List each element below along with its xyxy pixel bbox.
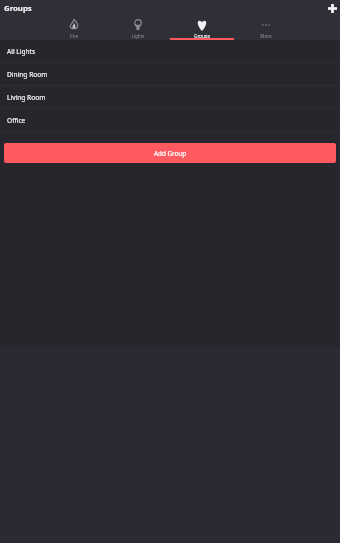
staticText: Living Room xyxy=(7,93,46,102)
staticText: More xyxy=(260,33,272,39)
staticText: Office xyxy=(7,116,26,125)
staticText: Dining Room xyxy=(7,70,48,79)
staticText: All Lights xyxy=(7,47,36,56)
button[interactable]: Lights xyxy=(106,16,170,40)
button[interactable]: Add group xyxy=(325,1,339,15)
staticText: Groups xyxy=(194,33,210,39)
button[interactable]: Dining Room xyxy=(0,63,340,86)
button[interactable]: More xyxy=(234,16,298,40)
button[interactable]: Add Group xyxy=(4,143,336,163)
button[interactable]: Fire xyxy=(42,16,106,40)
staticText: Add Group xyxy=(154,149,187,158)
button[interactable]: Office xyxy=(0,109,340,132)
staticText: Fire xyxy=(70,33,78,39)
button[interactable]: Living Room xyxy=(0,86,340,109)
staticText: Lights xyxy=(131,33,145,39)
staticText: Groups xyxy=(4,3,32,14)
button[interactable]: All Lights xyxy=(0,40,340,63)
button[interactable]: Groups xyxy=(170,16,234,40)
